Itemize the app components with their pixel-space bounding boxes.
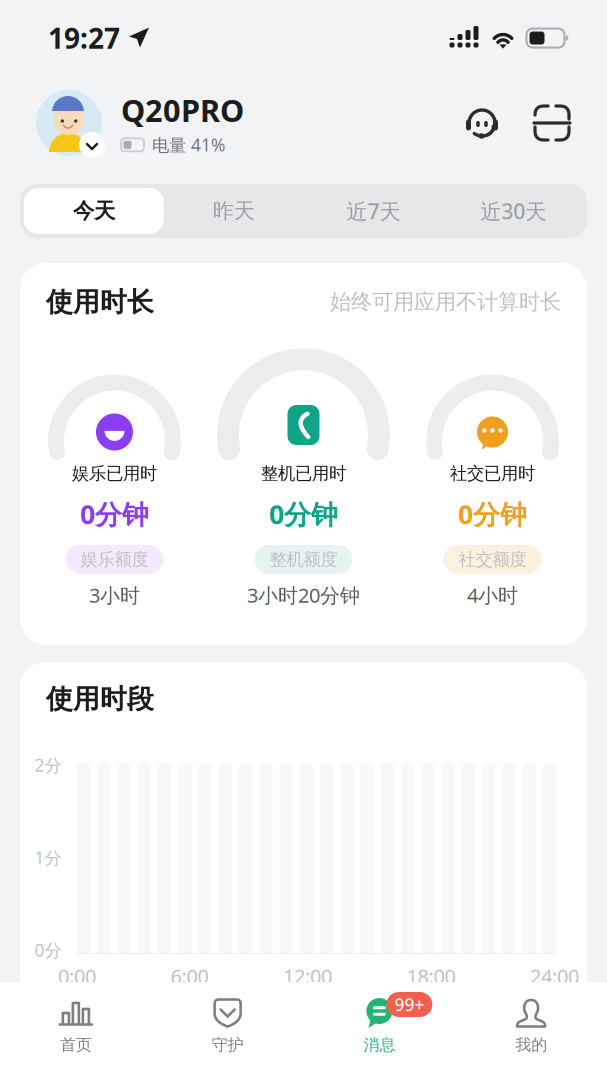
staticText: 3小时 xyxy=(89,582,140,608)
button[interactable]: 99+ xyxy=(303,982,455,1080)
button[interactable]: 近7天 xyxy=(303,188,443,234)
staticText: 6:00 xyxy=(170,963,208,989)
staticText: 0分 xyxy=(34,938,61,961)
staticText: 18:00 xyxy=(406,963,455,989)
staticText: 今天 xyxy=(73,198,115,224)
button[interactable]: 我的 xyxy=(455,982,607,1080)
staticText: 社交额度 xyxy=(458,549,526,570)
staticText: 0分钟 xyxy=(80,496,149,532)
staticText: 2分 xyxy=(34,753,61,776)
staticText: 99+ xyxy=(394,993,424,1016)
button[interactable]: 今天 xyxy=(24,188,164,234)
button[interactable]: Scan xyxy=(533,104,571,142)
button[interactable]: 昨天 xyxy=(164,188,304,234)
staticText: 电量 41% xyxy=(152,133,225,156)
staticText: 使用时段 xyxy=(46,683,154,715)
staticText: 首页 xyxy=(60,1035,92,1055)
staticText: 我的 xyxy=(515,1035,547,1055)
button[interactable]: 首页 xyxy=(0,982,152,1080)
staticText: 0分钟 xyxy=(269,496,338,532)
staticText: Q20PRO xyxy=(121,90,244,130)
staticText: 社交已用时 xyxy=(450,463,535,484)
staticText: 始终可用应用不计算时长 xyxy=(330,289,561,315)
staticText: 19:27 xyxy=(48,19,120,57)
staticText: 近7天 xyxy=(346,197,400,225)
staticText: 昨天 xyxy=(213,198,255,224)
button[interactable]: 守护 xyxy=(152,982,304,1080)
button[interactable]: Support xyxy=(463,104,501,142)
staticText: 守护 xyxy=(212,1035,244,1055)
staticText: 使用时长 xyxy=(46,286,154,318)
staticText: 3小时20分钟 xyxy=(247,582,360,608)
staticText: 0:00 xyxy=(58,963,96,989)
staticText: 12:00 xyxy=(283,963,332,989)
staticText: 整机额度 xyxy=(269,549,337,570)
staticText: 娱乐额度 xyxy=(80,549,148,570)
staticText: 近30天 xyxy=(480,197,546,225)
button[interactable]: Profile xyxy=(36,90,102,156)
button[interactable]: 近30天 xyxy=(443,188,583,234)
staticText: 1分 xyxy=(34,846,61,869)
staticText: 整机已用时 xyxy=(261,463,346,484)
staticText: 4小时 xyxy=(467,582,518,608)
staticText: 24:00 xyxy=(530,963,579,989)
staticText: 娱乐已用时 xyxy=(72,463,157,484)
staticText: 消息 xyxy=(363,1035,395,1055)
staticText: 0分钟 xyxy=(458,496,527,532)
